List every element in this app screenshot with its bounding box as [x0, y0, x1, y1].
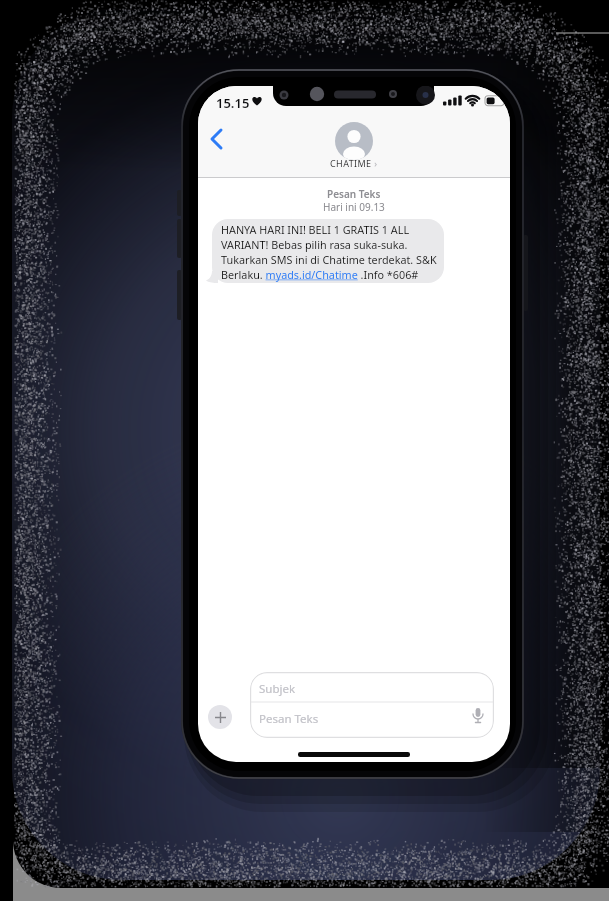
staticText: › — [372, 157, 378, 169]
staticText: CHATIME — [330, 157, 372, 169]
staticText: HANYA HARI INI! BELI 1 GRATIS 1 ALL VARI… — [221, 222, 437, 282]
button[interactable]: Subjek — [250, 672, 494, 738]
staticText: Pesan Teks — [259, 711, 319, 727]
button[interactable] — [335, 122, 373, 160]
button[interactable] — [204, 122, 232, 156]
staticText: Subjek — [259, 681, 296, 697]
staticText: Pesan Teks — [327, 187, 381, 201]
staticText: 15.15 — [216, 94, 250, 112]
staticText: Hari ini 09.13 — [323, 200, 385, 214]
button[interactable] — [268, 267, 365, 282]
button[interactable] — [208, 705, 232, 729]
